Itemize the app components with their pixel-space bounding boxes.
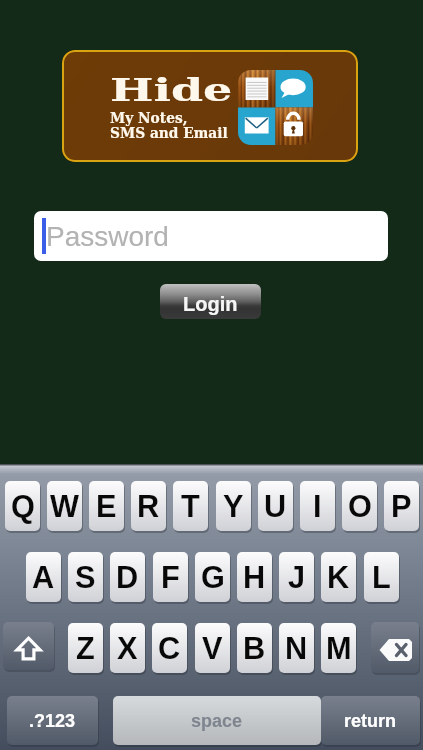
button[interactable]: O: [342, 481, 377, 531]
staticText: W: [50, 489, 79, 523]
button[interactable]: E: [89, 481, 124, 531]
staticText: L: [372, 560, 391, 594]
staticText: H: [243, 560, 266, 594]
button[interactable]: Backspace: [371, 622, 419, 673]
button[interactable]: U: [258, 481, 293, 531]
button[interactable]: N: [279, 623, 314, 673]
button[interactable]: I: [300, 481, 335, 531]
staticText: V: [202, 631, 223, 665]
staticText: Password: [46, 221, 169, 252]
staticText: Q: [11, 489, 35, 523]
button[interactable]: V: [195, 623, 230, 673]
staticText: Hide: [110, 71, 233, 108]
button[interactable]: J: [279, 552, 314, 602]
button[interactable]: Login: [160, 284, 261, 319]
staticText: J: [288, 560, 306, 594]
button[interactable]: A: [26, 552, 61, 602]
staticText: Y: [223, 489, 244, 523]
staticText: P: [391, 489, 412, 523]
button[interactable]: F: [153, 552, 188, 602]
staticText: B: [243, 631, 266, 665]
staticText: U: [264, 489, 287, 523]
staticText: My Notes, SMS and Email: [110, 109, 228, 141]
staticText: T: [181, 489, 200, 523]
staticText: Login: [183, 293, 238, 315]
staticText: N: [285, 631, 308, 665]
staticText: D: [116, 560, 139, 594]
button[interactable]: S: [68, 552, 103, 602]
staticText: C: [158, 631, 181, 665]
staticText: E: [96, 489, 117, 523]
staticText: O: [348, 489, 372, 523]
staticText: F: [161, 560, 180, 594]
button[interactable]: K: [321, 552, 356, 602]
staticText: G: [201, 560, 225, 594]
button[interactable]: Y: [216, 481, 251, 531]
button[interactable]: B: [237, 623, 272, 673]
button[interactable]: Password: [34, 211, 388, 261]
staticText: return: [344, 711, 397, 731]
button[interactable]: W: [47, 481, 82, 531]
staticText: I: [313, 489, 322, 523]
button[interactable]: return: [321, 696, 420, 745]
button[interactable]: X: [110, 623, 145, 673]
staticText: A: [32, 560, 55, 594]
button[interactable]: L: [364, 552, 399, 602]
button[interactable]: D: [110, 552, 145, 602]
button[interactable]: T: [173, 481, 208, 531]
button[interactable]: R: [131, 481, 166, 531]
button[interactable]: space: [113, 696, 321, 745]
staticText: .?123: [29, 711, 76, 731]
staticText: M: [326, 631, 352, 665]
button[interactable]: Z: [68, 623, 103, 673]
button[interactable]: Q: [5, 481, 40, 531]
staticText: K: [327, 560, 350, 594]
button[interactable]: H: [237, 552, 272, 602]
button[interactable]: M: [321, 623, 356, 673]
button[interactable]: G: [195, 552, 230, 602]
button[interactable]: Shift: [3, 622, 54, 670]
staticText: X: [117, 631, 138, 665]
staticText: S: [75, 560, 96, 594]
staticText: R: [137, 489, 160, 523]
button[interactable]: P: [384, 481, 419, 531]
button[interactable]: C: [152, 623, 187, 673]
staticText: space: [191, 711, 243, 731]
button[interactable]: .?123: [7, 696, 98, 745]
staticText: Z: [76, 631, 95, 665]
